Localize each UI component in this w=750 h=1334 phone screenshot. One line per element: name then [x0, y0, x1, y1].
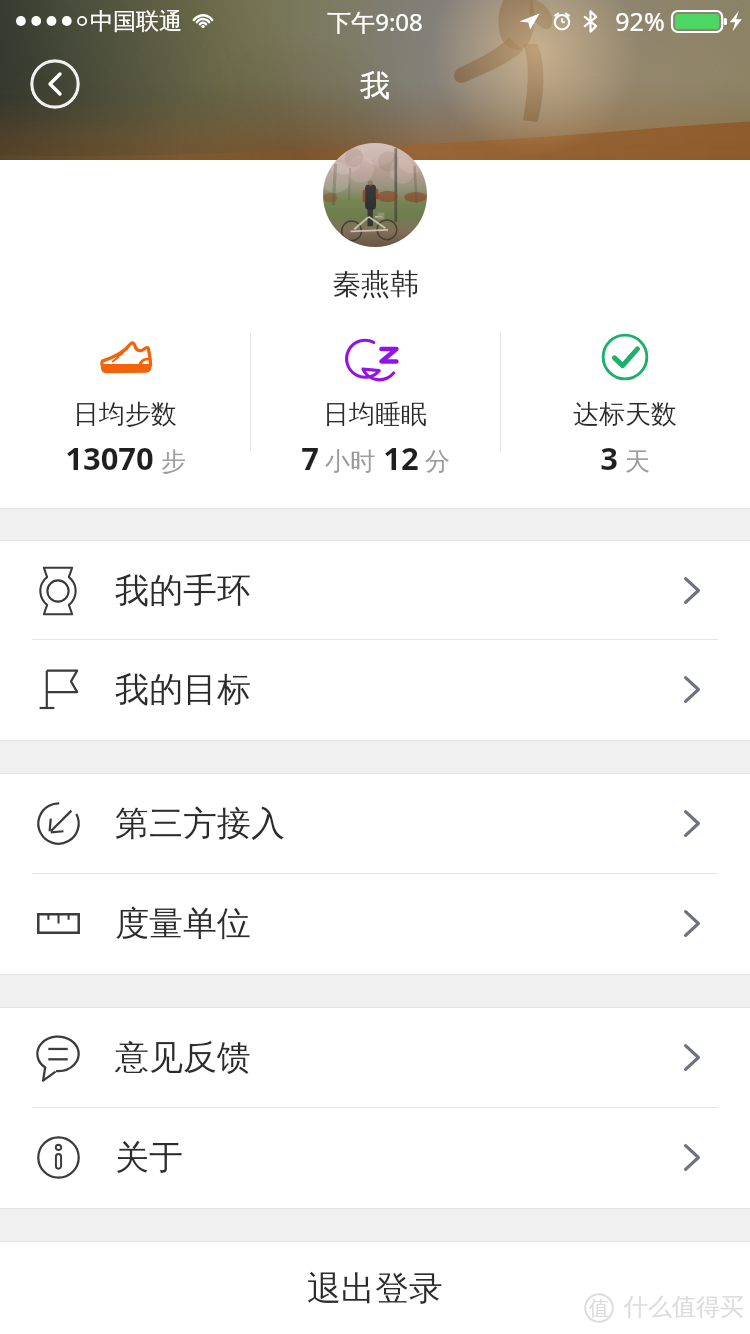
staticText: 步: [161, 446, 186, 477]
staticText: 意见反馈: [115, 1036, 251, 1079]
staticText: 值: [589, 1296, 609, 1321]
staticText: 什么值得买: [624, 1292, 744, 1322]
staticText: 我: [360, 67, 390, 105]
staticText: 3: [600, 437, 618, 479]
button[interactable]: 我的手环: [0, 541, 750, 640]
button[interactable]: 第三方接入: [0, 774, 750, 873]
button[interactable]: 我的目标: [0, 640, 750, 739]
staticText: 达标天数: [573, 398, 677, 431]
staticText: 天: [625, 446, 650, 477]
staticText: 7: [301, 437, 319, 479]
staticText: 我的目标: [115, 668, 251, 711]
staticText: 秦燕韩: [332, 266, 419, 303]
staticText: 下午9:08: [327, 5, 423, 38]
staticText: 12: [383, 437, 419, 479]
staticText: 13070: [65, 437, 154, 479]
staticText: 关于: [115, 1136, 183, 1179]
staticText: 日均睡眠: [323, 398, 427, 431]
staticText: 第三方接入: [115, 802, 285, 845]
button[interactable]: 意见反馈: [0, 1008, 750, 1107]
staticText: 日均步数: [73, 398, 177, 431]
staticText: 分: [425, 446, 450, 477]
staticText: 度量单位: [115, 902, 251, 945]
button[interactable]: 关于: [0, 1108, 750, 1207]
button[interactable]: Back: [30, 59, 80, 109]
staticText: 92%: [615, 4, 665, 38]
staticText: 小时: [325, 446, 375, 477]
button[interactable]: 退出登录: [0, 1242, 750, 1334]
staticText: 我的手环: [115, 569, 251, 612]
button[interactable]: 度量单位: [0, 874, 750, 973]
staticText: 退出登录: [307, 1267, 443, 1310]
staticText: 中国联通: [90, 7, 182, 36]
